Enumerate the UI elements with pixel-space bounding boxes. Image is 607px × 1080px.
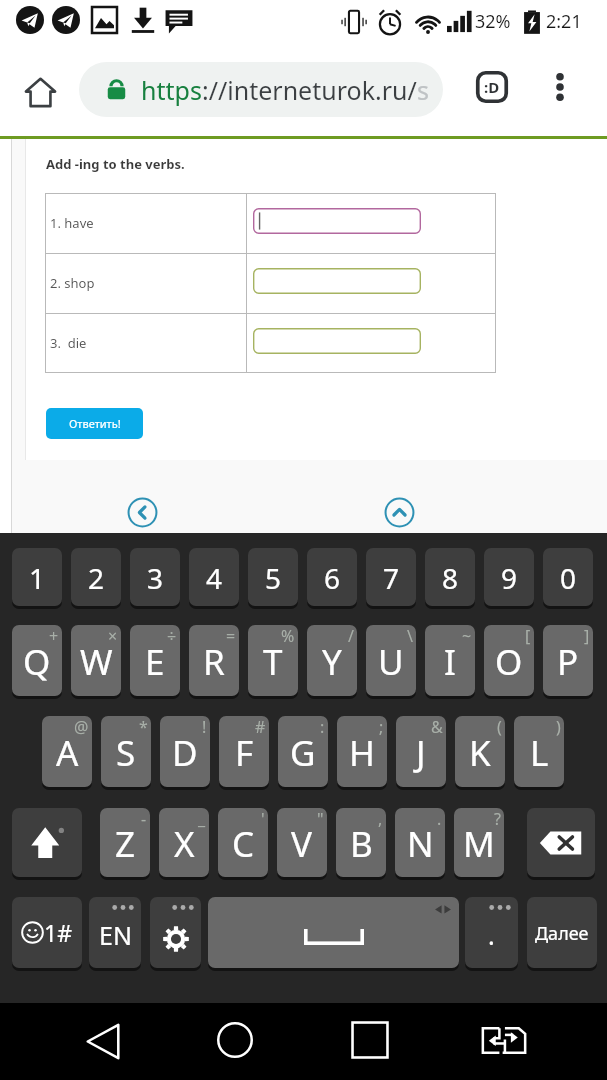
- staticText: R: [203, 638, 225, 686]
- staticText: 9: [501, 559, 518, 597]
- button[interactable]: 7: [366, 548, 416, 606]
- button[interactable]: Recent apps: [341, 1011, 399, 1069]
- button[interactable]: T: [248, 625, 298, 696]
- button[interactable]: P: [543, 625, 593, 696]
- button[interactable]: Emoji: [470, 65, 514, 109]
- button[interactable]: 2: [71, 548, 121, 606]
- staticText: +: [49, 625, 59, 647]
- staticText: 1. have: [50, 214, 94, 232]
- button[interactable]: Previous: [127, 497, 158, 528]
- staticText: /: [348, 625, 354, 647]
- button[interactable]: D: [160, 716, 210, 787]
- staticText: #: [255, 716, 266, 738]
- staticText: B: [350, 820, 373, 868]
- staticText: V: [291, 820, 313, 868]
- button[interactable]: B: [336, 808, 386, 877]
- button[interactable]: E: [130, 625, 180, 696]
- button[interactable]: 4: [189, 548, 239, 606]
- button[interactable]: Z: [100, 808, 150, 877]
- staticText: 4: [206, 559, 223, 597]
- staticText: F: [235, 729, 254, 777]
- staticText: :: [320, 716, 325, 738]
- button[interactable]: 3: [130, 548, 180, 606]
- staticText: %: [281, 625, 295, 647]
- button[interactable]: Shift: [12, 808, 82, 877]
- button[interactable]: 0: [543, 548, 593, 606]
- staticText: :D: [484, 77, 500, 97]
- staticText: *: [139, 716, 148, 738]
- button[interactable]: EN: [89, 897, 141, 968]
- button[interactable]: 9: [484, 548, 534, 606]
- button[interactable]: Space: [208, 897, 459, 968]
- staticText: ': [261, 808, 265, 830]
- button[interactable]: F: [219, 716, 269, 787]
- staticText: _: [198, 808, 206, 830]
- button[interactable]: 5: [248, 548, 298, 606]
- button[interactable]: More options: [538, 65, 582, 109]
- staticText: L: [530, 729, 549, 777]
- staticText: G: [290, 729, 316, 777]
- staticText: ÷: [167, 625, 177, 647]
- button[interactable]: 6: [307, 548, 357, 606]
- staticText: [: [525, 625, 531, 647]
- staticText: 5: [265, 559, 282, 597]
- button[interactable]: Home: [18, 70, 62, 114]
- staticText: S: [116, 729, 136, 777]
- button[interactable]: .: [465, 897, 518, 968]
- staticText: s: [417, 73, 429, 107]
- staticText: D: [172, 729, 198, 777]
- button[interactable]: U: [366, 625, 416, 696]
- staticText: Y: [322, 638, 342, 686]
- button[interactable]: O: [484, 625, 534, 696]
- button[interactable]: Q: [12, 625, 62, 696]
- staticText: 2. shop: [50, 274, 95, 292]
- staticText: =: [226, 625, 236, 647]
- staticText: 1: [29, 559, 46, 597]
- button[interactable]: 1: [12, 548, 62, 606]
- button[interactable]: L: [514, 716, 564, 787]
- button[interactable]: Emoji and symbols: [12, 897, 82, 968]
- button[interactable]: 8: [425, 548, 475, 606]
- staticText: Z: [115, 820, 136, 868]
- button[interactable]: G: [278, 716, 328, 787]
- button[interactable]: S: [101, 716, 151, 787]
- button[interactable]: Ответить!: [46, 408, 143, 439]
- staticText: -: [141, 808, 147, 830]
- staticText: 3: [147, 559, 164, 597]
- button[interactable]: K: [455, 716, 505, 787]
- staticText: 32%: [475, 9, 511, 34]
- button[interactable]: Home: [206, 1011, 264, 1069]
- button[interactable]: Y: [307, 625, 357, 696]
- button[interactable]: W: [71, 625, 121, 696]
- button[interactable]: Back: [74, 1012, 132, 1070]
- staticText: \: [407, 625, 413, 647]
- staticText: W: [80, 638, 113, 686]
- staticText: X: [174, 820, 195, 868]
- staticText: ~: [462, 625, 472, 647]
- button[interactable]: Up: [384, 497, 415, 528]
- button[interactable]: N: [395, 808, 445, 877]
- button[interactable]: X: [159, 808, 209, 877]
- button[interactable]: V: [277, 808, 327, 877]
- button[interactable]: M: [454, 808, 504, 877]
- staticText: Ответить!: [69, 416, 121, 431]
- button[interactable]: H: [337, 716, 387, 787]
- staticText: ": [317, 808, 324, 830]
- staticText: O: [495, 638, 523, 686]
- button[interactable]: Backspace: [527, 808, 595, 877]
- staticText: T: [263, 638, 283, 686]
- button[interactable]: A: [42, 716, 92, 787]
- staticText: ,: [378, 808, 383, 830]
- staticText: (: [497, 716, 502, 738]
- button[interactable]: Settings: [150, 897, 201, 968]
- button[interactable]: Далее: [527, 897, 597, 968]
- staticText: A: [56, 729, 79, 777]
- button[interactable]: https: [79, 62, 443, 117]
- staticText: &: [431, 716, 443, 738]
- staticText: P: [557, 638, 579, 686]
- button[interactable]: I: [425, 625, 475, 696]
- button[interactable]: R: [189, 625, 239, 696]
- button[interactable]: J: [396, 716, 446, 787]
- button[interactable]: C: [218, 808, 268, 877]
- button[interactable]: Switch apps: [475, 1011, 533, 1069]
